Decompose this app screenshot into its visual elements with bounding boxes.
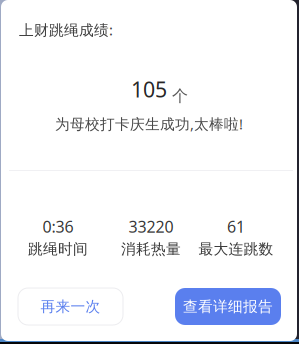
staticText: 再来一次 — [40, 297, 100, 315]
staticText: 上财跳绳成绩: — [19, 20, 113, 39]
staticText: 105 — [131, 75, 167, 103]
staticText: 个 — [172, 86, 188, 106]
button[interactable]: 查看详细报告 — [175, 288, 281, 325]
staticText: 33220 — [128, 216, 173, 237]
staticText: 为母校打卡庆生成功,太棒啦! — [55, 114, 243, 133]
staticText: 最大连跳数 — [198, 240, 273, 258]
staticText: 61 — [227, 216, 245, 237]
staticText: 查看详细报告 — [183, 297, 273, 315]
staticText: 0:36 — [42, 216, 73, 237]
button[interactable]: 再来一次 — [18, 288, 123, 325]
staticText: 消耗热量 — [121, 240, 181, 258]
staticText: 跳绳时间 — [28, 240, 88, 258]
